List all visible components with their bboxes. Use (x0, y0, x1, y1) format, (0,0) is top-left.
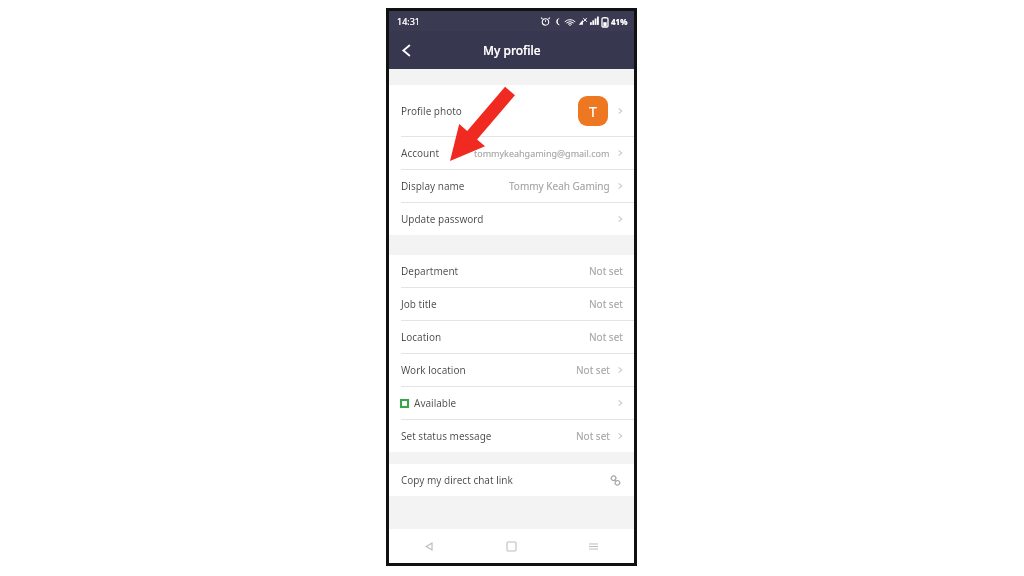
staticText: Not set (576, 429, 610, 443)
other: Open (616, 149, 624, 157)
staticText: 41% (611, 16, 628, 27)
button[interactable]: Home (470, 529, 552, 563)
button[interactable]: Department (389, 255, 634, 287)
button[interactable]: Work location (389, 354, 634, 386)
staticText: Department (401, 264, 459, 278)
staticText: Tommy Keah Gaming (509, 179, 610, 193)
staticText: Account (401, 146, 440, 160)
button[interactable]: Update password (389, 203, 634, 235)
other: Open (616, 182, 624, 190)
other: Open (616, 366, 624, 374)
button[interactable]: Available (389, 387, 634, 419)
staticText: 14:31 (397, 15, 421, 27)
other: Open (616, 399, 624, 407)
other: Open (616, 432, 624, 440)
staticText: Not set (589, 330, 623, 344)
button[interactable]: Account (389, 137, 634, 169)
button[interactable]: Recents (552, 529, 634, 563)
other: Copy link (608, 473, 622, 487)
other: Open (616, 215, 624, 223)
staticText: Not set (576, 363, 610, 377)
staticText: tommykeahgaming@gmail.com (474, 147, 610, 159)
staticText: Set status message (401, 429, 492, 443)
button[interactable]: Display name (389, 170, 634, 202)
button[interactable]: Set status message (389, 420, 634, 452)
staticText: Job title (401, 297, 437, 311)
staticText: Location (401, 330, 442, 344)
staticText: Copy my direct chat link (401, 473, 513, 487)
staticText: Not set (589, 264, 623, 278)
staticText: Work location (401, 363, 466, 377)
button[interactable]: Location (389, 321, 634, 353)
button[interactable]: Job title (389, 288, 634, 320)
other: Open (616, 107, 624, 115)
staticText: T (589, 102, 597, 121)
button[interactable]: Back (389, 33, 423, 67)
staticText: Not set (589, 297, 623, 311)
button[interactable]: Back (389, 529, 470, 563)
staticText: Profile photo (401, 104, 462, 118)
button[interactable]: Profile photo (389, 85, 634, 136)
staticText: Update password (401, 212, 484, 226)
button[interactable]: Copy my direct chat link (389, 464, 634, 496)
staticText: Display name (401, 179, 465, 193)
staticText: Available (414, 396, 457, 410)
staticText: My profile (483, 42, 541, 58)
